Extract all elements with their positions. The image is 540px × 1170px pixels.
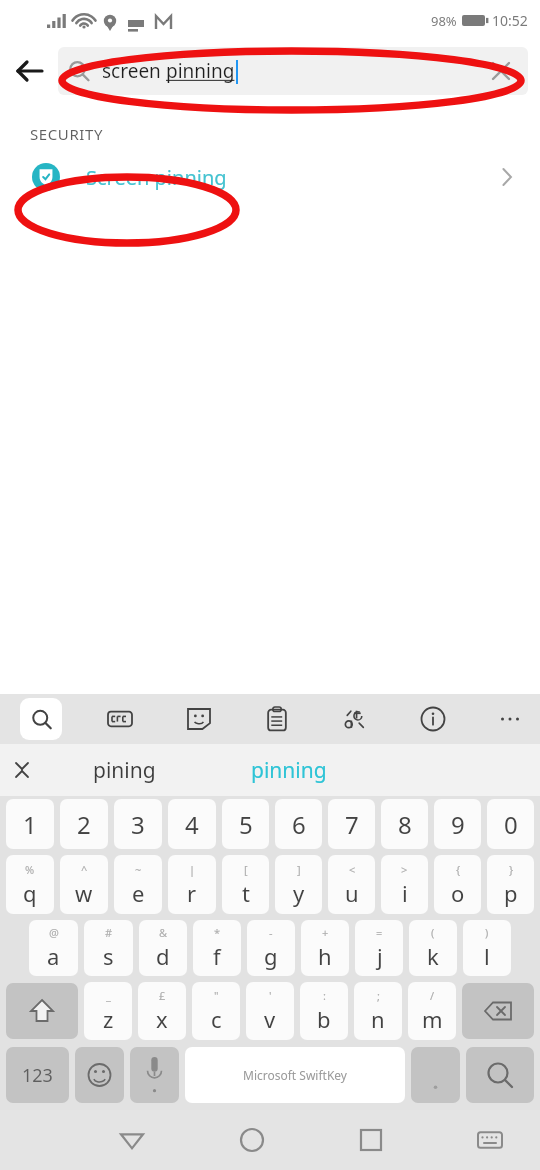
button[interactable]: Shift bbox=[6, 983, 78, 1039]
button[interactable]: 0 bbox=[487, 799, 534, 849]
button[interactable]: Voice input bbox=[130, 1047, 179, 1103]
staticText: e bbox=[132, 878, 145, 908]
button[interactable]: £ bbox=[138, 982, 186, 1040]
button[interactable]: ; bbox=[354, 982, 402, 1040]
staticText: d bbox=[156, 941, 170, 971]
staticText: pining bbox=[93, 756, 156, 785]
button[interactable]: 9 bbox=[434, 799, 481, 849]
staticText: / bbox=[430, 988, 435, 1003]
staticText: pinning bbox=[166, 58, 235, 84]
button[interactable]: # bbox=[84, 920, 133, 976]
button[interactable]: Hide keyboard bbox=[462, 1112, 518, 1168]
button[interactable]: Expand bbox=[0, 748, 44, 792]
staticText: i bbox=[402, 878, 408, 908]
button[interactable]: 6 bbox=[275, 799, 322, 849]
staticText: - bbox=[269, 925, 273, 940]
button[interactable]: More bbox=[490, 698, 532, 740]
button[interactable]: / bbox=[408, 982, 456, 1040]
staticText: & bbox=[159, 925, 168, 940]
button[interactable]: } bbox=[487, 855, 534, 914]
staticText: ~ bbox=[135, 862, 142, 877]
button[interactable]: ~ bbox=[114, 855, 162, 914]
staticText: n bbox=[371, 1004, 385, 1034]
button[interactable]: < bbox=[328, 855, 375, 914]
button[interactable]: 2 bbox=[60, 799, 108, 849]
staticText: 6 bbox=[292, 808, 306, 841]
button[interactable]: GIF bbox=[99, 698, 141, 740]
button[interactable]: Back bbox=[0, 42, 58, 100]
button[interactable]: pining bbox=[44, 744, 204, 796]
staticText: ^ bbox=[81, 862, 88, 877]
button[interactable]: 4 bbox=[168, 799, 216, 849]
staticText: @ bbox=[49, 925, 59, 940]
staticText: v bbox=[264, 1004, 276, 1034]
button[interactable]: _ bbox=[84, 982, 132, 1040]
staticText: p bbox=[504, 878, 518, 908]
button[interactable]: 123 bbox=[6, 1047, 69, 1103]
staticText: 10:52 bbox=[492, 11, 528, 30]
button[interactable]: | bbox=[168, 855, 216, 914]
button[interactable]: % bbox=[6, 855, 54, 914]
button[interactable]: Back bbox=[104, 1112, 160, 1168]
button[interactable]: { bbox=[434, 855, 481, 914]
button[interactable]: ) bbox=[463, 920, 511, 976]
staticText: [ bbox=[244, 862, 248, 877]
staticText: a bbox=[47, 941, 60, 971]
button[interactable]: 8 bbox=[381, 799, 428, 849]
staticText: 2 bbox=[77, 808, 91, 841]
staticText: % bbox=[25, 862, 35, 877]
button[interactable]: Stickers bbox=[178, 698, 220, 740]
staticText: 4 bbox=[185, 808, 199, 841]
button[interactable]: 1 bbox=[6, 799, 54, 849]
button[interactable]: ( bbox=[409, 920, 457, 976]
button[interactable]: + bbox=[301, 920, 349, 976]
button[interactable]: 3 bbox=[114, 799, 162, 849]
button[interactable]: Search bbox=[20, 698, 62, 740]
button[interactable]: pinning bbox=[204, 744, 374, 796]
button[interactable]: Clear bbox=[484, 54, 518, 88]
button[interactable]: Search bbox=[466, 1047, 534, 1103]
button[interactable]: 7 bbox=[328, 799, 375, 849]
button[interactable]: [ bbox=[222, 855, 269, 914]
button[interactable]: > bbox=[381, 855, 428, 914]
button[interactable]: screen bbox=[58, 47, 528, 95]
button[interactable]: & bbox=[139, 920, 187, 976]
staticText: c bbox=[211, 1004, 222, 1034]
staticText: w bbox=[75, 878, 93, 908]
staticText: m bbox=[422, 1004, 443, 1034]
button[interactable]: Clipboard bbox=[256, 698, 298, 740]
staticText: j bbox=[377, 941, 383, 971]
staticText: Microsoft SwiftKey bbox=[243, 1067, 347, 1083]
staticText: 1 bbox=[23, 808, 37, 841]
button[interactable]: @ bbox=[29, 920, 78, 976]
button[interactable]: - bbox=[247, 920, 295, 976]
button[interactable]: Info bbox=[412, 698, 454, 740]
button[interactable]: Microsoft SwiftKey bbox=[185, 1047, 405, 1103]
button[interactable]: * bbox=[193, 920, 241, 976]
button[interactable]: Open bbox=[484, 154, 530, 200]
staticText: 0 bbox=[504, 808, 518, 841]
button[interactable]: : bbox=[300, 982, 348, 1040]
button[interactable]: Screen pinning bbox=[0, 144, 540, 210]
button[interactable]: = bbox=[355, 920, 403, 976]
staticText: k bbox=[427, 941, 439, 971]
button[interactable]: Translate bbox=[334, 698, 376, 740]
staticText: 98% bbox=[431, 12, 457, 30]
staticText: = bbox=[376, 925, 383, 940]
button[interactable]: Backspace bbox=[462, 983, 534, 1039]
staticText: < bbox=[349, 862, 356, 877]
button[interactable]: ' bbox=[246, 982, 294, 1040]
staticText: + bbox=[322, 925, 329, 940]
button[interactable]: " bbox=[192, 982, 240, 1040]
staticText: ( bbox=[431, 925, 435, 940]
button[interactable]: Emoji bbox=[75, 1047, 124, 1103]
button[interactable]: Recents bbox=[343, 1112, 399, 1168]
button[interactable]: 5 bbox=[222, 799, 269, 849]
button[interactable]: Punctuation bbox=[411, 1047, 460, 1103]
button[interactable]: ^ bbox=[60, 855, 108, 914]
staticText: Screen pinning bbox=[86, 164, 227, 191]
button[interactable]: ] bbox=[275, 855, 322, 914]
staticText: | bbox=[189, 862, 196, 877]
staticText: } bbox=[509, 862, 514, 877]
button[interactable]: Home bbox=[224, 1112, 280, 1168]
